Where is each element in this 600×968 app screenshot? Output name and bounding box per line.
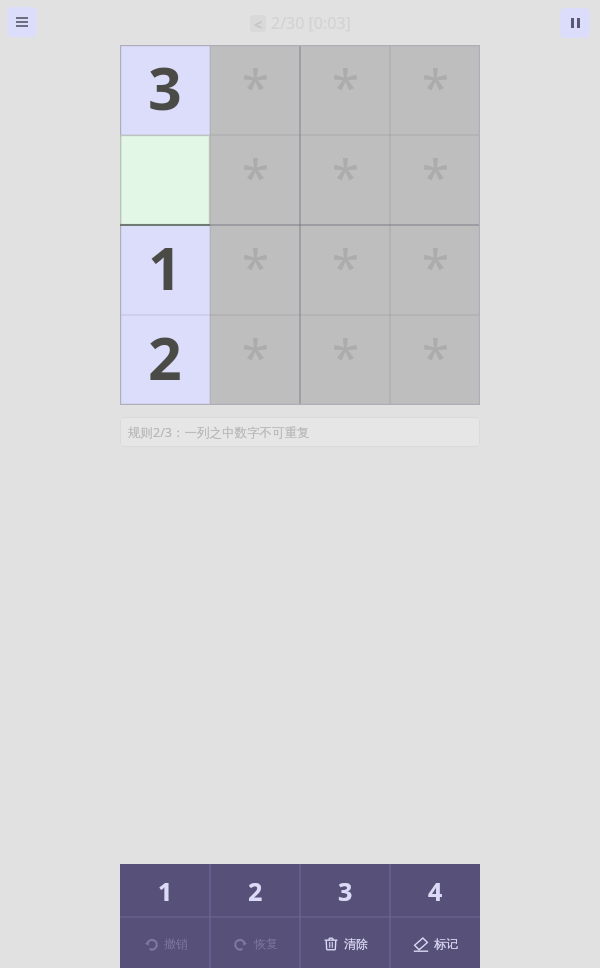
staticText: * bbox=[242, 144, 269, 211]
staticText: 1 bbox=[158, 874, 173, 908]
staticText: 3 bbox=[338, 874, 353, 908]
staticText: * bbox=[422, 144, 449, 211]
staticText: 2 bbox=[148, 317, 182, 397]
staticText: 撤销 bbox=[164, 936, 188, 951]
button[interactable]: * bbox=[390, 315, 480, 405]
staticText: 3 bbox=[148, 47, 182, 127]
staticText: * bbox=[422, 54, 449, 121]
button[interactable]: 3 bbox=[120, 45, 210, 135]
staticText: * bbox=[332, 144, 359, 211]
staticText: * bbox=[242, 54, 269, 121]
button[interactable]: 2 bbox=[120, 315, 210, 405]
button[interactable]: 1 bbox=[120, 225, 210, 315]
staticText: 标记 bbox=[434, 936, 458, 951]
button[interactable]: 标记 bbox=[390, 917, 480, 968]
staticText: * bbox=[422, 234, 449, 301]
button[interactable]: * bbox=[390, 225, 480, 315]
button[interactable]: * bbox=[300, 45, 390, 135]
button[interactable]: * bbox=[210, 315, 300, 405]
button[interactable]: 规则2/3：一列之中数字不可重复 bbox=[120, 417, 480, 447]
button[interactable]: * bbox=[210, 45, 300, 135]
staticText: * bbox=[422, 324, 449, 391]
staticText: * bbox=[332, 324, 359, 391]
button[interactable]: 1 bbox=[120, 864, 210, 917]
button[interactable]: * bbox=[390, 45, 480, 135]
staticText: 恢复 bbox=[254, 936, 278, 951]
button[interactable]: * bbox=[300, 225, 390, 315]
staticText: 规则2/3：一列之中数字不可重复 bbox=[128, 424, 310, 441]
staticText: * bbox=[332, 234, 359, 301]
button[interactable]: 4 bbox=[390, 864, 480, 917]
staticText: 2/30 [0:03] bbox=[271, 12, 351, 34]
button[interactable]: * bbox=[300, 315, 390, 405]
staticText: * bbox=[242, 234, 269, 301]
button[interactable]: Previous bbox=[250, 15, 266, 32]
button[interactable]: Pause bbox=[560, 8, 590, 38]
button[interactable]: * bbox=[390, 135, 480, 225]
button[interactable]: 撤销 bbox=[120, 917, 210, 968]
staticText: * bbox=[242, 324, 269, 391]
staticText: * bbox=[332, 54, 359, 121]
button[interactable]: 清除 bbox=[300, 917, 390, 968]
button[interactable]: * bbox=[210, 225, 300, 315]
button[interactable]: Menu bbox=[7, 7, 37, 37]
button[interactable]: * bbox=[300, 135, 390, 225]
staticText: 1 bbox=[148, 227, 182, 307]
button[interactable]: * bbox=[210, 135, 300, 225]
staticText: < bbox=[254, 15, 263, 32]
button[interactable]: 恢复 bbox=[210, 917, 300, 968]
staticText: 清除 bbox=[344, 936, 368, 951]
button[interactable] bbox=[120, 135, 210, 225]
button[interactable]: 2 bbox=[210, 864, 300, 917]
staticText: 2 bbox=[248, 874, 263, 908]
button[interactable]: 3 bbox=[300, 864, 390, 917]
staticText: 4 bbox=[428, 874, 443, 908]
